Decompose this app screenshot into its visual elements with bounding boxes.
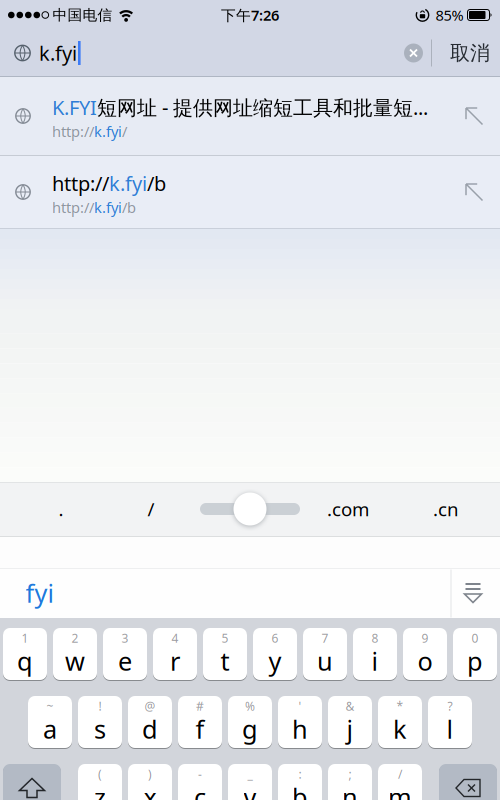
staticText: o [417,644,432,678]
staticText: n [342,780,358,800]
staticText: i [371,644,378,678]
staticText: ; [348,766,351,782]
button[interactable]: 9 [403,628,447,680]
button[interactable]: K.FYI [0,77,500,155]
staticText: 3 [121,630,128,646]
button[interactable]: ; [328,764,372,800]
button[interactable]: Clear text [404,43,423,62]
button[interactable]: . [41,489,81,529]
button[interactable]: fyi [25,576,54,610]
staticText: h [292,712,308,746]
staticText: / [147,497,154,521]
button[interactable]: 8 [353,628,397,680]
staticText: 中国电信 [53,6,113,24]
staticText: 85% [435,5,463,25]
staticText: K.FYI [52,94,97,121]
button[interactable]: Expand candidates [453,573,493,613]
staticText: w [65,644,85,678]
button[interactable]: % [228,696,272,748]
button[interactable]: 4 [153,628,197,680]
staticText: k.fyi [109,170,147,197]
staticText: ( [98,766,102,782]
staticText: m [388,780,412,800]
staticText: k [393,712,407,746]
button[interactable]: ! [78,696,122,748]
staticText: http:// [52,121,94,141]
staticText: a [43,712,57,746]
button[interactable]: @ [128,696,172,748]
staticText: % [245,698,255,714]
button[interactable]: 7 [303,628,347,680]
staticText: / [122,121,127,141]
button[interactable]: ( [78,764,122,800]
staticText: 8 [371,630,378,646]
staticText: - [198,766,202,782]
staticText: b [292,780,308,800]
staticText: k.fyi [39,40,77,66]
staticText: e [118,644,132,678]
staticText: 下午7:26 [221,5,279,25]
button[interactable]: 1 [3,628,47,680]
staticText: ! [98,698,101,714]
staticText: * [396,698,403,714]
button[interactable]: http:// [0,156,500,228]
button[interactable]: ~ [28,696,72,748]
staticText: ? [447,698,452,714]
button[interactable]: - [178,764,222,800]
staticText: t [220,644,229,678]
button[interactable]: 5 [203,628,247,680]
staticText: z [94,780,106,800]
staticText: 取消 [450,41,490,65]
staticText: 6 [271,630,278,646]
staticText: v [243,780,256,800]
staticText: l [446,712,453,746]
button[interactable]: 6 [253,628,297,680]
staticText: http:// [52,170,109,197]
staticText: . [58,497,63,521]
button[interactable]: Address field [0,30,81,76]
button[interactable]: 3 [103,628,147,680]
staticText: 9 [421,630,428,646]
button[interactable]: ? [428,696,472,748]
button[interactable]: * [378,696,422,748]
staticText: u [317,644,333,678]
staticText: fyi [25,576,54,610]
staticText: 1 [21,630,28,646]
button[interactable]: ) [128,764,172,800]
button[interactable]: Delete [439,764,497,800]
staticText: 7 [321,630,328,646]
staticText: ' [298,698,301,714]
button[interactable]: 2 [53,628,97,680]
staticText: / [398,766,402,782]
staticText: /b [122,197,136,217]
staticText: /b [147,170,166,197]
button[interactable]: .cn [421,489,471,529]
staticText: c [194,780,206,800]
staticText: x [143,780,156,800]
staticText: q [17,644,33,678]
button[interactable]: .com [318,489,378,529]
button[interactable]: / [131,489,171,529]
staticText: .com [327,497,369,521]
staticText: k.fyi [94,121,122,141]
staticText: ~ [46,698,53,714]
staticText: s [94,712,106,746]
button[interactable]: ' [278,696,322,748]
staticText: # [196,698,204,714]
staticText: j [346,712,353,746]
button[interactable]: 0 [453,628,497,680]
button[interactable]: 取消 [432,41,500,65]
button[interactable]: Shift [3,764,61,800]
button[interactable]: & [328,696,372,748]
staticText: r [170,644,180,678]
button[interactable]: _ [228,764,272,800]
staticText: d [142,712,158,746]
staticText: ) [148,766,152,782]
staticText: 0 [471,630,478,646]
button[interactable]: # [178,696,222,748]
staticText: http:// [52,197,94,217]
button[interactable]: / [378,764,422,800]
button[interactable]: Keyboard slider [233,492,266,525]
staticText: _ [247,766,252,782]
button[interactable]: : [278,764,322,800]
